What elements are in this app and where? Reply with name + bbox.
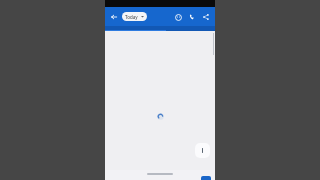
button[interactable]: Today	[122, 12, 147, 21]
button[interactable]: Create	[195, 143, 210, 158]
button[interactable]	[201, 176, 211, 180]
button[interactable]: Share	[200, 11, 212, 23]
button[interactable]: Call	[186, 11, 198, 23]
button[interactable]: Back	[108, 11, 119, 22]
button[interactable]: Search	[172, 11, 184, 23]
staticText: Today	[125, 14, 138, 20]
